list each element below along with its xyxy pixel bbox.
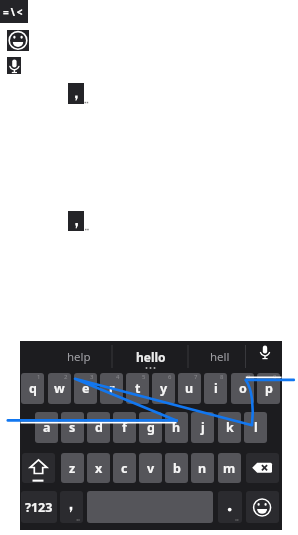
staticText: f xyxy=(122,419,127,436)
staticText: b xyxy=(173,460,181,477)
button[interactable] xyxy=(246,491,279,523)
staticText: j xyxy=(201,419,205,436)
staticText: k xyxy=(226,419,234,436)
staticText: i xyxy=(214,380,218,397)
staticText: x xyxy=(95,460,103,477)
button[interactable]: help xyxy=(49,342,109,372)
button[interactable]: k xyxy=(218,412,241,443)
button[interactable]: ?123 xyxy=(21,491,57,523)
staticText: 9 xyxy=(247,373,251,381)
button[interactable]: q xyxy=(21,373,44,404)
button[interactable] xyxy=(68,211,84,231)
staticText: r xyxy=(109,380,115,397)
staticText: n xyxy=(198,460,207,477)
button[interactable]: u xyxy=(178,373,201,404)
button[interactable]: i xyxy=(204,373,227,404)
button[interactable]: z xyxy=(61,453,84,483)
button[interactable]: d xyxy=(87,412,110,443)
button[interactable]: p xyxy=(257,373,280,404)
staticText: 7 xyxy=(194,373,198,381)
staticText: l xyxy=(254,419,258,436)
button[interactable]: o xyxy=(231,373,254,404)
staticText: 3 xyxy=(90,373,94,381)
staticText: u xyxy=(185,380,194,397)
staticText: g xyxy=(147,419,155,436)
button[interactable]: l xyxy=(244,412,267,443)
button[interactable]: c xyxy=(113,453,136,483)
staticText: s xyxy=(69,419,76,436)
button[interactable] xyxy=(7,57,21,74)
button[interactable] xyxy=(246,341,282,372)
staticText: 1 xyxy=(37,373,41,381)
button[interactable]: s xyxy=(61,412,84,443)
staticText: hello xyxy=(136,349,166,365)
button[interactable]: m xyxy=(218,453,241,483)
staticText: d xyxy=(95,419,103,436)
staticText: ?123 xyxy=(25,499,53,516)
staticText: =\< xyxy=(3,5,25,19)
button[interactable]: t xyxy=(126,373,149,404)
staticText: help xyxy=(67,349,91,365)
button[interactable] xyxy=(22,453,55,483)
staticText: 4 xyxy=(116,373,120,381)
staticText: e xyxy=(82,380,90,397)
button[interactable] xyxy=(218,491,242,523)
staticText: 0 xyxy=(273,373,277,381)
button[interactable]: y xyxy=(152,373,175,404)
staticText: q xyxy=(29,380,37,397)
button[interactable]: a xyxy=(35,412,58,443)
staticText: h xyxy=(172,419,181,436)
button[interactable]: =\< xyxy=(0,0,28,23)
staticText: t xyxy=(135,380,141,397)
staticText: 5 xyxy=(142,373,146,381)
staticText: y xyxy=(160,380,168,397)
button[interactable] xyxy=(60,491,83,523)
button[interactable]: w xyxy=(48,373,71,404)
staticText: hell xyxy=(210,349,230,365)
button[interactable]: g xyxy=(139,412,162,443)
button[interactable]: hello xyxy=(121,342,181,372)
button[interactable]: f xyxy=(113,412,136,443)
staticText: a xyxy=(43,419,51,436)
staticText: 6 xyxy=(168,373,172,381)
button[interactable]: h xyxy=(165,412,188,443)
button[interactable]: j xyxy=(191,412,214,443)
button[interactable]: r xyxy=(100,373,123,404)
staticText: 8 xyxy=(220,373,224,381)
button[interactable] xyxy=(7,30,29,51)
staticText: 2 xyxy=(64,373,68,381)
staticText: o xyxy=(239,380,247,397)
button[interactable]: b xyxy=(165,453,188,483)
button[interactable] xyxy=(246,453,279,483)
button[interactable]: e xyxy=(74,373,97,404)
button[interactable]: v xyxy=(139,453,162,483)
staticText: w xyxy=(54,380,65,397)
button[interactable]: x xyxy=(87,453,110,483)
staticText: p xyxy=(265,380,273,397)
staticText: m xyxy=(223,460,236,477)
staticText: v xyxy=(147,460,155,477)
staticText: c xyxy=(121,460,128,477)
button[interactable] xyxy=(68,83,84,104)
button[interactable]: hell xyxy=(190,342,250,372)
staticText: z xyxy=(69,460,76,477)
button[interactable]: n xyxy=(191,453,214,483)
